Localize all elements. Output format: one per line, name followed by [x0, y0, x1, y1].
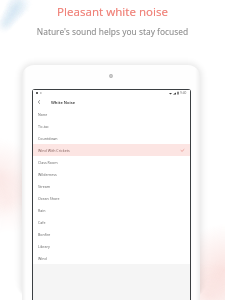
- staticText: Pleasant white noise: [0, 4, 225, 20]
- button[interactable]: Tic-tac: [33, 120, 190, 132]
- staticText: Tic-tac: [38, 124, 49, 129]
- staticText: Stream: [38, 184, 51, 189]
- staticText: Rain: [38, 208, 46, 213]
- staticText: Bonfire: [38, 232, 51, 237]
- staticText: Library: [38, 244, 50, 249]
- button[interactable]: Wind: [33, 252, 190, 264]
- staticText: Wilderness: [38, 172, 57, 177]
- staticText: Cafe: [38, 220, 46, 225]
- button[interactable]: Library: [33, 240, 190, 252]
- button[interactable]: Wilderness: [33, 168, 190, 180]
- staticText: 9:40: [180, 91, 187, 95]
- staticText: Nature's sound helps you stay focused: [0, 26, 225, 37]
- staticText: Wind: [38, 256, 47, 261]
- staticText: Class Room: [38, 160, 58, 165]
- button[interactable]: Rain: [33, 204, 190, 216]
- button[interactable]: Bonfire: [33, 228, 190, 240]
- button[interactable]: Countdown: [33, 132, 190, 144]
- button[interactable]: Cafe: [33, 216, 190, 228]
- button[interactable]: Stream: [33, 180, 190, 192]
- staticText: Ocean Shore: [38, 196, 60, 201]
- button[interactable]: Ocean Shore: [33, 192, 190, 204]
- staticText: None: [38, 112, 48, 117]
- button[interactable]: None: [33, 108, 190, 120]
- button[interactable]: Class Room: [33, 156, 190, 168]
- staticText: Wind With Crickets: [38, 148, 70, 153]
- button[interactable]: Wind With Crickets: [33, 144, 190, 156]
- button[interactable]: Back: [33, 96, 45, 108]
- staticText: White Noise: [51, 100, 76, 105]
- staticText: Countdown: [38, 136, 58, 141]
